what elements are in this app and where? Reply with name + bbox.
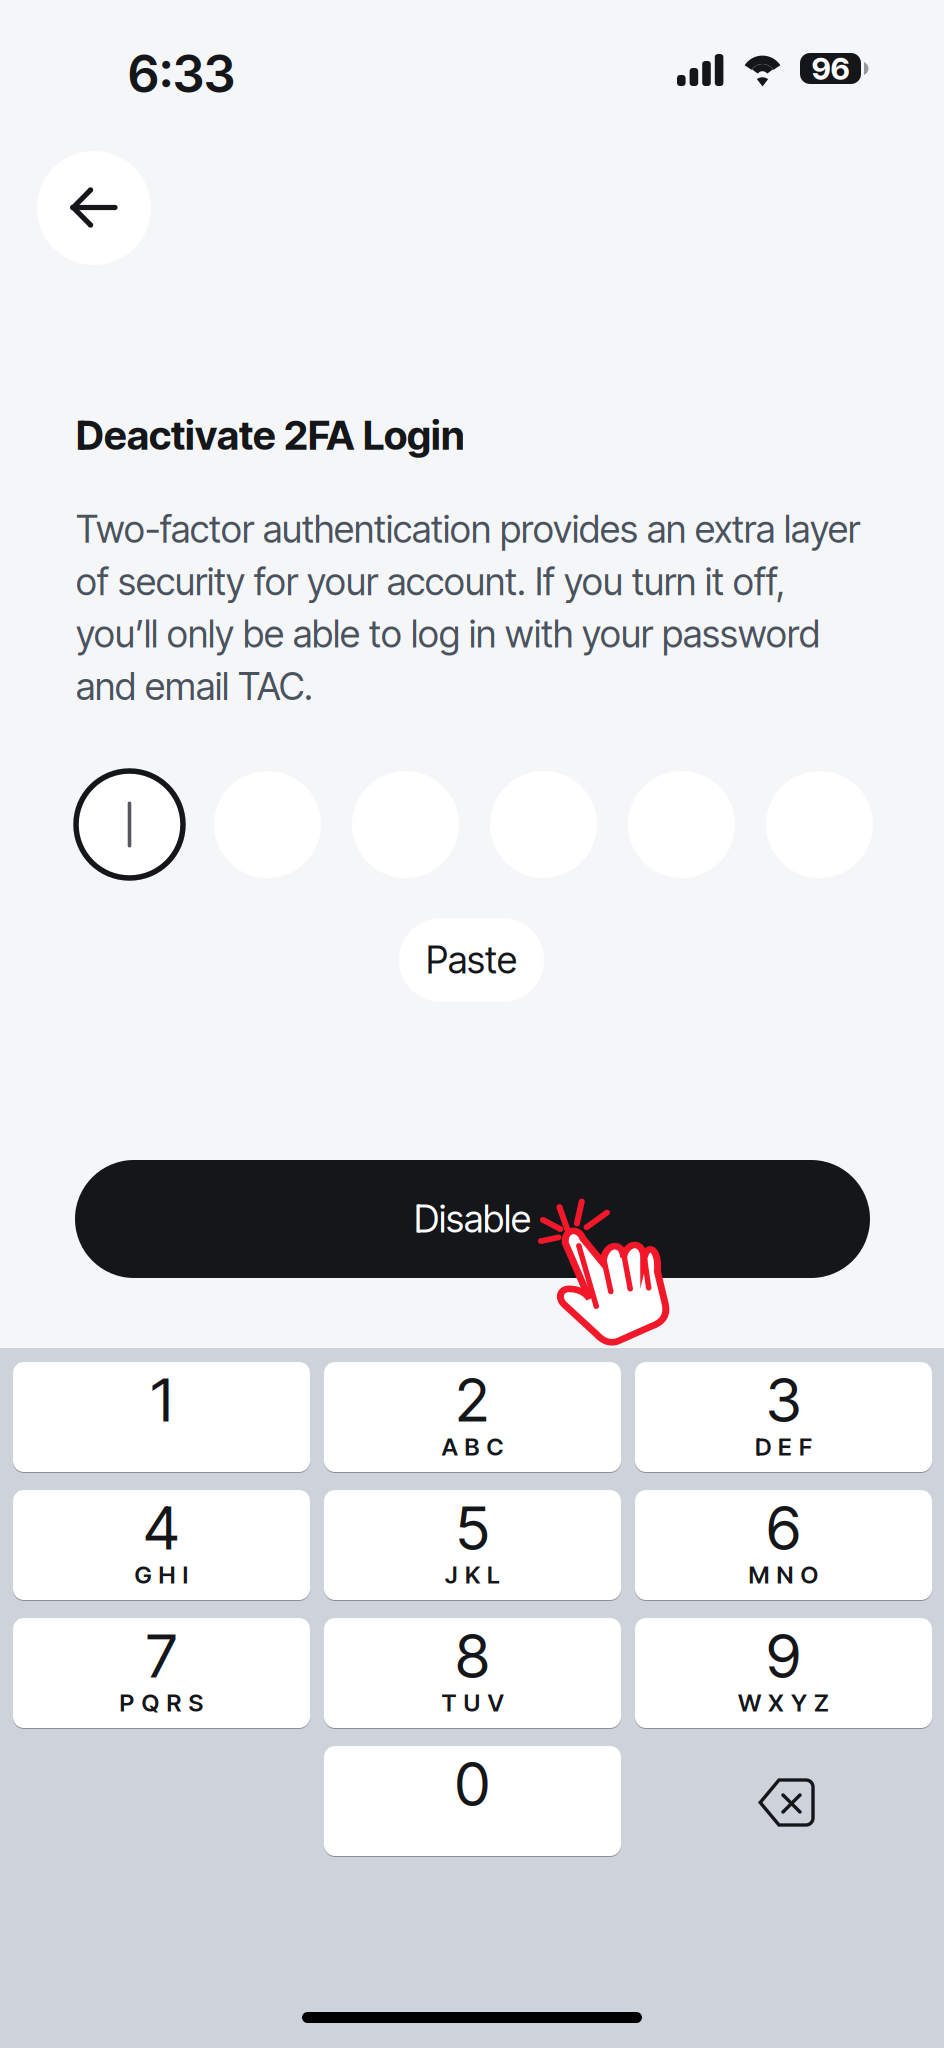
staticText: P Q R S bbox=[119, 1688, 203, 1717]
staticText: A B C bbox=[441, 1432, 503, 1461]
button[interactable]: 3 bbox=[635, 1362, 932, 1472]
button[interactable]: Back bbox=[37, 151, 151, 265]
button[interactable]: 7 bbox=[13, 1618, 310, 1728]
staticText: G H I bbox=[134, 1560, 188, 1589]
button[interactable]: 2 bbox=[324, 1362, 621, 1472]
button[interactable]: Delete bbox=[635, 1746, 932, 1856]
staticText: Paste bbox=[426, 937, 517, 983]
staticText: Deactivate 2FA Login bbox=[76, 411, 465, 459]
button[interactable]: 9 bbox=[635, 1618, 932, 1728]
button[interactable]: 8 bbox=[324, 1618, 621, 1728]
staticText: 4 bbox=[143, 1495, 179, 1560]
button[interactable]: 0 bbox=[324, 1746, 621, 1856]
staticText: M N O bbox=[748, 1560, 818, 1589]
staticText: 9 bbox=[766, 1623, 800, 1688]
button[interactable]: 5 bbox=[324, 1490, 621, 1600]
staticText: 7 bbox=[146, 1623, 177, 1688]
staticText: W X Y Z bbox=[738, 1688, 829, 1717]
staticText: 1 bbox=[151, 1367, 172, 1432]
staticText: 6 bbox=[766, 1495, 800, 1560]
button[interactable]: 4 bbox=[13, 1490, 310, 1600]
staticText: Disable bbox=[414, 1196, 531, 1242]
staticText: J K L bbox=[445, 1560, 500, 1589]
staticText: 5 bbox=[456, 1495, 489, 1560]
staticText: 6:33 bbox=[128, 43, 235, 104]
staticText: Two-factor authentication provides an ex… bbox=[76, 503, 860, 713]
staticText: 2 bbox=[455, 1367, 489, 1432]
staticText: T U V bbox=[441, 1688, 503, 1717]
staticText: 96 bbox=[811, 50, 849, 87]
button[interactable]: Paste bbox=[399, 918, 544, 1002]
button[interactable]: 1 bbox=[13, 1362, 310, 1472]
staticText: 0 bbox=[455, 1751, 490, 1816]
staticText: 8 bbox=[455, 1623, 489, 1688]
staticText: 3 bbox=[766, 1367, 801, 1432]
button[interactable]: 6 bbox=[635, 1490, 932, 1600]
button[interactable]: Disable bbox=[75, 1160, 870, 1278]
staticText: D E F bbox=[755, 1432, 812, 1461]
